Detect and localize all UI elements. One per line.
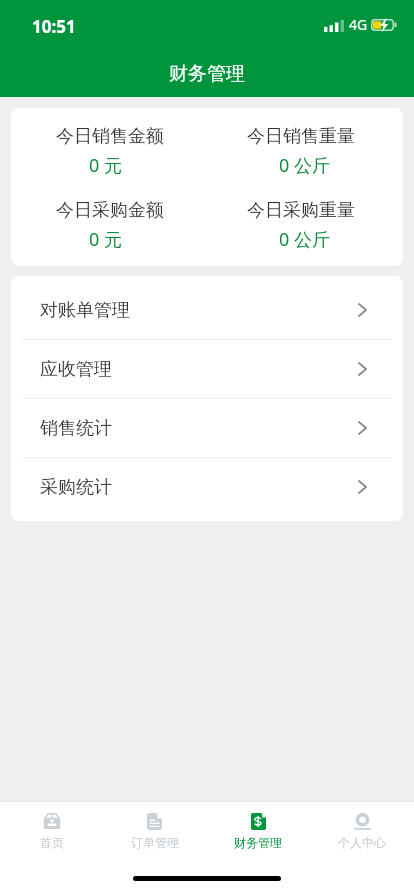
staticText: 0 公斤 xyxy=(279,153,330,178)
staticText: 个人中心 xyxy=(338,835,386,850)
staticText: 首页 xyxy=(40,835,64,850)
other: 打开 xyxy=(358,480,367,494)
staticText: 应收管理 xyxy=(40,358,112,381)
staticText: 财务管理 xyxy=(234,835,282,850)
staticText: 0 元 xyxy=(89,153,122,178)
staticText: 今日采购重量 xyxy=(247,199,355,222)
other: 打开 xyxy=(358,421,367,435)
staticText: 0 公斤 xyxy=(279,227,330,252)
button[interactable]: 首页 xyxy=(0,812,103,850)
staticText: 订单管理 xyxy=(131,835,179,850)
other: 打开 xyxy=(358,303,367,317)
button[interactable]: 采购统计 xyxy=(11,458,403,516)
button[interactable]: 财务管理 xyxy=(206,812,310,850)
staticText: 对账单管理 xyxy=(40,299,130,322)
button[interactable]: 销售统计 xyxy=(11,399,403,458)
other: 打开 xyxy=(358,362,367,376)
staticText: 财务管理 xyxy=(169,62,245,86)
staticText: 0 元 xyxy=(89,227,122,252)
button[interactable]: 应收管理 xyxy=(11,340,403,399)
staticText: 4G xyxy=(349,15,368,34)
staticText: 采购统计 xyxy=(40,476,112,499)
staticText: 今日销售金额 xyxy=(56,125,164,148)
button[interactable]: 个人中心 xyxy=(310,812,414,850)
staticText: 10:51 xyxy=(32,15,76,38)
staticText: 今日销售重量 xyxy=(247,125,355,148)
button[interactable]: 对账单管理 xyxy=(11,281,403,340)
staticText: 销售统计 xyxy=(40,417,112,440)
staticText: 今日采购金额 xyxy=(56,199,164,222)
button[interactable]: 订单管理 xyxy=(103,812,206,850)
